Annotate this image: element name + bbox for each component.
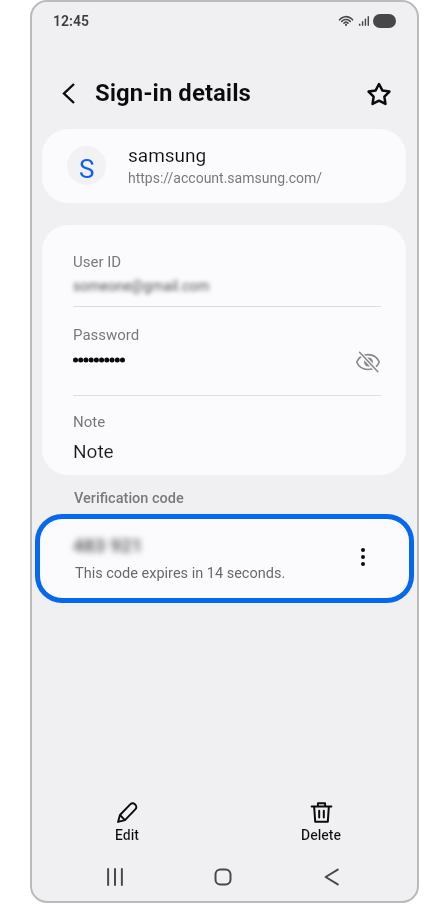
button[interactable]: Recent apps [91, 853, 139, 901]
staticText: samsung [128, 144, 207, 166]
staticText: 12:45 [53, 13, 90, 29]
button[interactable]: Back [308, 853, 356, 901]
button[interactable]: More options [345, 539, 381, 575]
staticText: Edit [92, 827, 162, 843]
button[interactable]: Delete [286, 794, 356, 848]
staticText: 483 921 [73, 534, 143, 556]
staticText: Verification code [74, 490, 184, 507]
staticText: Delete [286, 827, 356, 843]
staticText: This code expires in 14 seconds. [75, 565, 286, 582]
staticText: Note [73, 413, 106, 431]
staticText: S [79, 154, 95, 184]
button[interactable]: Edit [92, 794, 162, 848]
button[interactable]: S [42, 129, 406, 203]
button[interactable]: Navigate up [46, 70, 92, 116]
staticText: Password [73, 326, 140, 344]
button[interactable]: Home [199, 853, 247, 901]
button[interactable]: Show password [350, 344, 386, 380]
staticText: Note [73, 440, 114, 462]
staticText: https://account.samsung.com/ [128, 170, 323, 186]
staticText: Sign-in details [95, 79, 251, 107]
button[interactable]: Add to favourites [356, 71, 402, 117]
staticText: User ID [73, 253, 122, 271]
staticText: someone@gmail.com [73, 278, 210, 294]
button[interactable]: 483 921 [35, 514, 414, 603]
